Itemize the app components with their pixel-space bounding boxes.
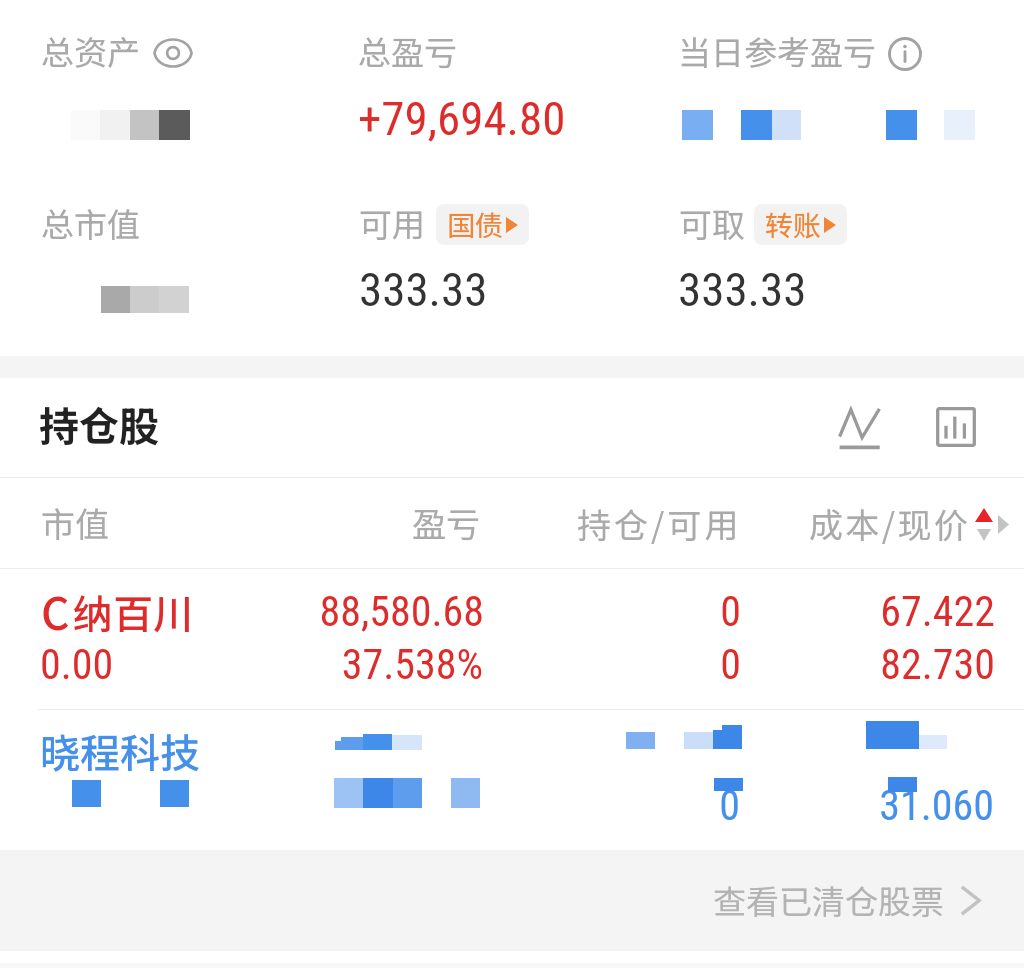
button[interactable] [0,710,1024,850]
staticText: 纳百川 [73,583,193,641]
staticText: 333.33 [359,262,488,317]
staticText: 0.00 [40,640,114,689]
button[interactable]: 国债 [436,204,529,245]
staticText: 可用 [359,199,425,247]
button[interactable] [0,564,1024,708]
button[interactable]: Toggle asset visibility [153,38,193,68]
staticText: C [41,579,70,643]
staticText: 82.730 [0,640,995,689]
button[interactable]: 转账 [754,204,847,245]
staticText: 持仓/可用 [577,499,742,548]
staticText: 持仓股 [39,395,159,453]
staticText: 市值 [41,498,109,547]
staticText: 查看已清仓股票 [713,876,944,924]
button[interactable]: Information [888,37,922,71]
staticText: 晓程科技 [40,722,200,780]
button[interactable] [690,850,995,951]
staticText: 盈亏 [412,498,480,547]
staticText: +79,694.80 [358,91,566,146]
staticText: 0 [0,587,741,636]
button[interactable]: Bar chart [931,402,981,452]
staticText: 总市值 [41,199,140,247]
staticText: 37.538% [0,640,483,689]
staticText: 当日参考盈亏 [678,27,876,75]
staticText: 转账 [765,204,822,245]
staticText: 总资产 [41,27,140,75]
staticText: 31.060 [0,781,994,830]
staticText: 可取 [679,199,745,247]
staticText: 成本/现价 [809,499,971,548]
button[interactable]: Line chart [834,403,884,453]
staticText: 333.33 [678,262,807,317]
staticText: 总盈亏 [358,27,457,75]
staticText: 67.422 [0,587,995,636]
staticText: 0 [0,781,740,830]
staticText: 88,580.68 [0,587,484,636]
staticText: 0 [0,640,741,689]
staticText: 国债 [447,204,504,245]
